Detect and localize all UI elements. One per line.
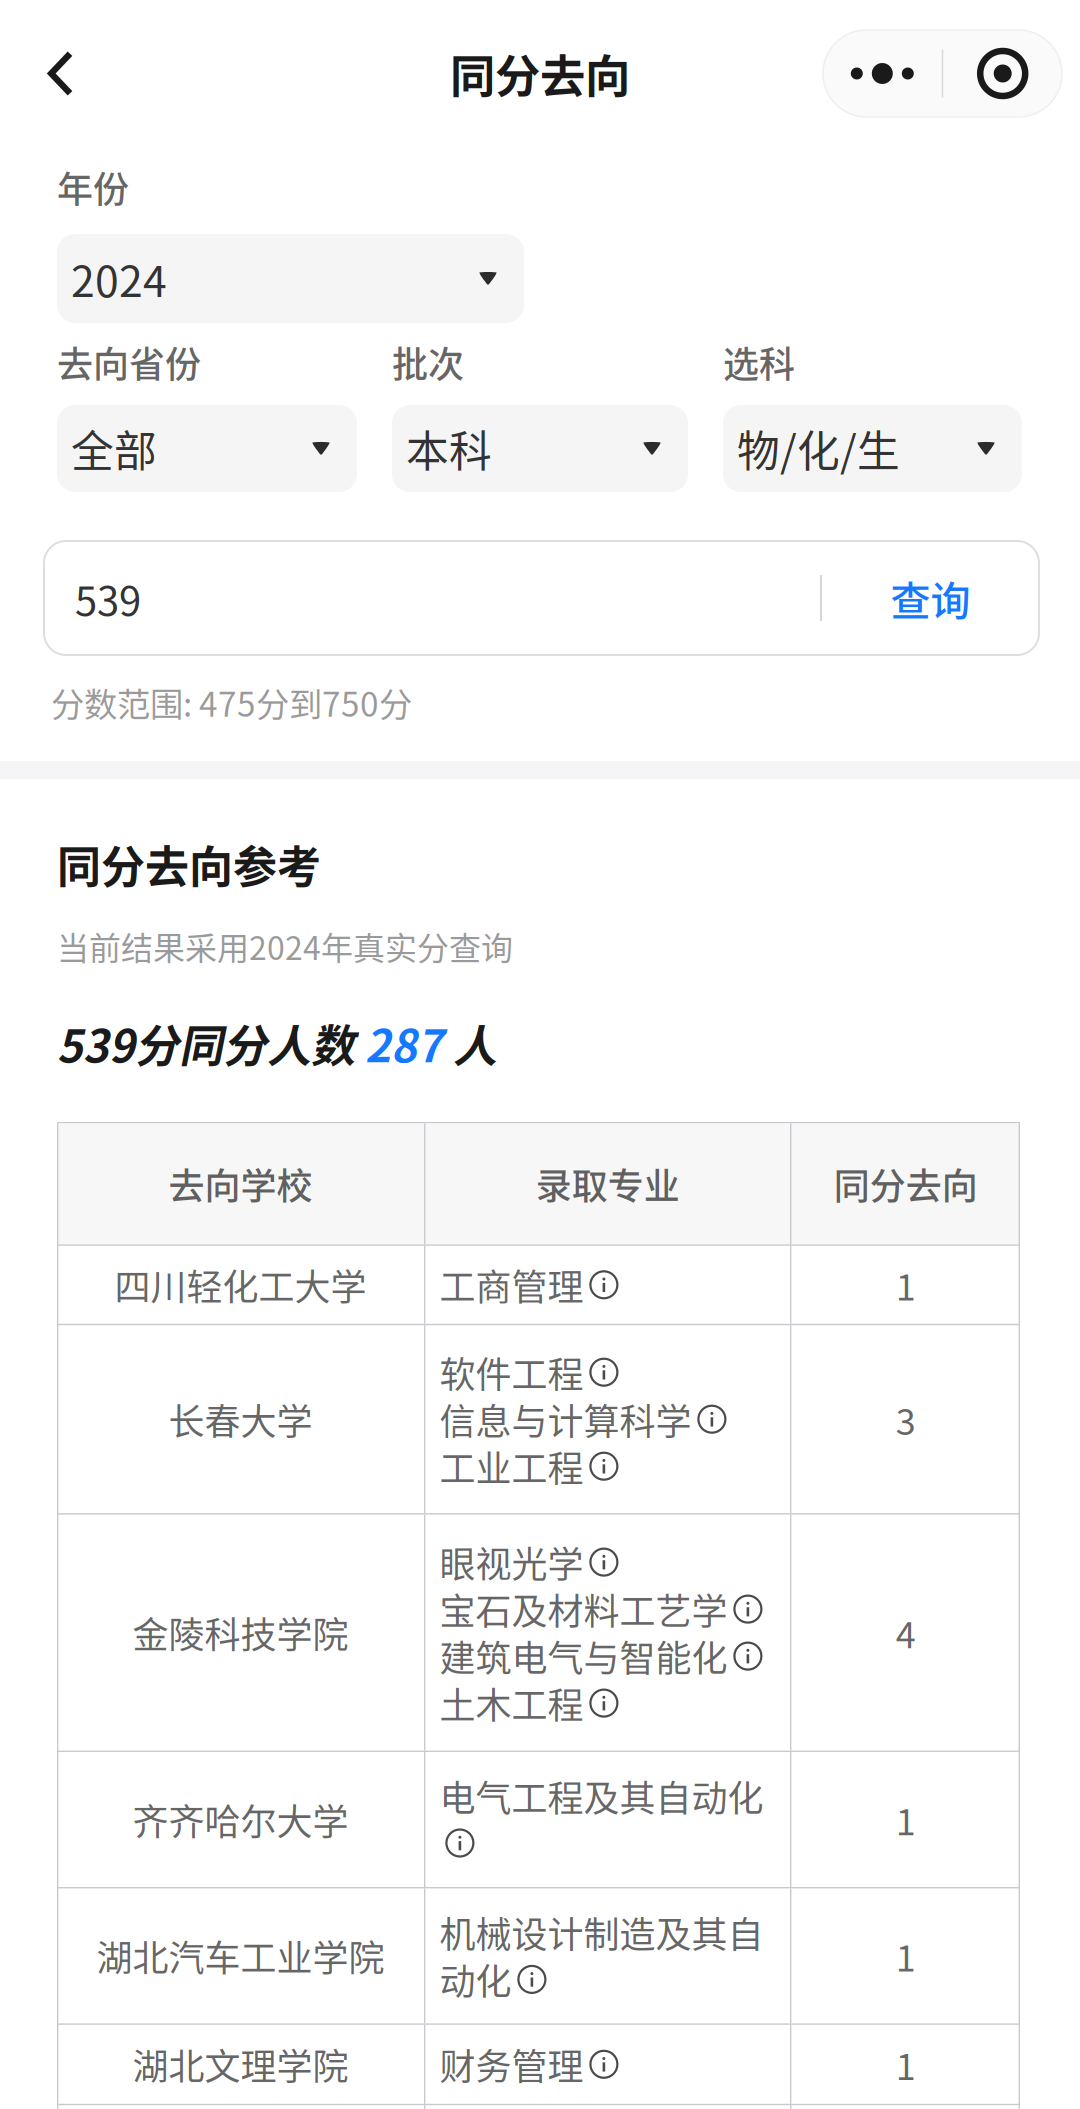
staticText: 年份 <box>57 161 129 213</box>
staticText: 湖北文理学院 <box>132 2038 348 2090</box>
button[interactable]: 物/化/生 <box>723 405 1022 492</box>
staticText: 工商管理 <box>439 1259 583 1311</box>
staticText: 539 <box>75 569 141 627</box>
staticText: 同分去向参考 <box>57 832 321 896</box>
staticText: 选科 <box>723 336 795 388</box>
staticText: 本科 <box>406 418 492 479</box>
staticText: 同分去向 <box>834 1158 978 1210</box>
staticText: 1 <box>896 1259 916 1311</box>
button[interactable]: Mini program menu <box>943 30 1062 117</box>
staticText: 1 <box>896 2038 916 2090</box>
staticText: 四川轻化工大学 <box>114 1259 366 1311</box>
staticText: 电气工程及其自动化 <box>439 1770 763 1822</box>
staticText: 长春大学 <box>168 1393 312 1445</box>
staticText: 539分同分人数 <box>57 1011 365 1075</box>
staticText: 2024 <box>71 248 167 309</box>
staticText: 机械设计制造及其自 <box>439 1906 763 1958</box>
staticText: 建筑电气与智能化 <box>439 1630 727 1682</box>
button[interactable]: 查询 <box>822 541 1039 655</box>
staticText: 眼视光学 <box>439 1536 583 1588</box>
staticText: 分数范围: 475分到750分 <box>51 678 412 726</box>
staticText: 信息与计算科学 <box>439 1393 691 1445</box>
staticText: 财务管理 <box>439 2038 583 2090</box>
button[interactable]: Back <box>13 25 108 121</box>
staticText: 4 <box>896 1606 916 1659</box>
staticText: 动化 <box>439 1953 511 2005</box>
staticText: 查询 <box>890 569 970 627</box>
staticText: 1 <box>896 1793 916 1845</box>
staticText: 金陵科技学院 <box>132 1606 348 1659</box>
staticText: 287 <box>365 1011 443 1075</box>
staticText: 工业工程 <box>439 1440 583 1492</box>
staticText: 宝石及材料工艺学 <box>439 1583 727 1635</box>
staticText: 人 <box>443 1011 497 1075</box>
button[interactable]: 全部 <box>57 405 357 492</box>
staticText: 物/化/生 <box>737 418 900 479</box>
staticText: 全部 <box>71 418 157 479</box>
button[interactable]: 本科 <box>392 405 688 492</box>
staticText: 土木工程 <box>439 1677 583 1729</box>
staticText: 同分去向 <box>450 41 630 106</box>
staticText: 齐齐哈尔大学 <box>132 1793 348 1845</box>
staticText: 去向学校 <box>168 1158 312 1210</box>
button[interactable]: More <box>823 30 942 117</box>
staticText: 批次 <box>392 336 464 388</box>
staticText: 当前结果采用2024年真实分查询 <box>57 923 513 969</box>
staticText: 录取专业 <box>536 1158 680 1210</box>
staticText: 3 <box>896 1393 916 1445</box>
staticText: 软件工程 <box>439 1346 583 1398</box>
staticText: 去向省份 <box>57 336 201 388</box>
button[interactable]: 2024 <box>57 234 524 323</box>
staticText: 1 <box>896 1930 916 1982</box>
staticText: 湖北汽车工业学院 <box>96 1930 384 1982</box>
